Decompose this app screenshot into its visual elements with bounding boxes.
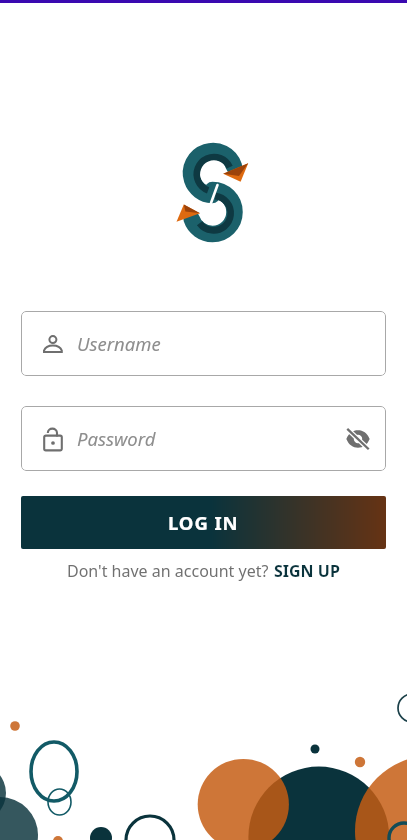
button[interactable]: Username xyxy=(21,311,386,376)
staticText: LOG IN xyxy=(168,510,239,535)
staticText: SIGN UP xyxy=(274,560,340,582)
staticText: Password xyxy=(77,426,156,451)
button[interactable]: Show password xyxy=(336,417,380,461)
button[interactable]: Password xyxy=(21,406,386,471)
staticText: Don't have an account yet? xyxy=(67,560,269,582)
button[interactable]: LOG IN xyxy=(21,496,386,549)
staticText: Username xyxy=(77,331,161,356)
button[interactable]: SIGN UP xyxy=(274,560,340,582)
